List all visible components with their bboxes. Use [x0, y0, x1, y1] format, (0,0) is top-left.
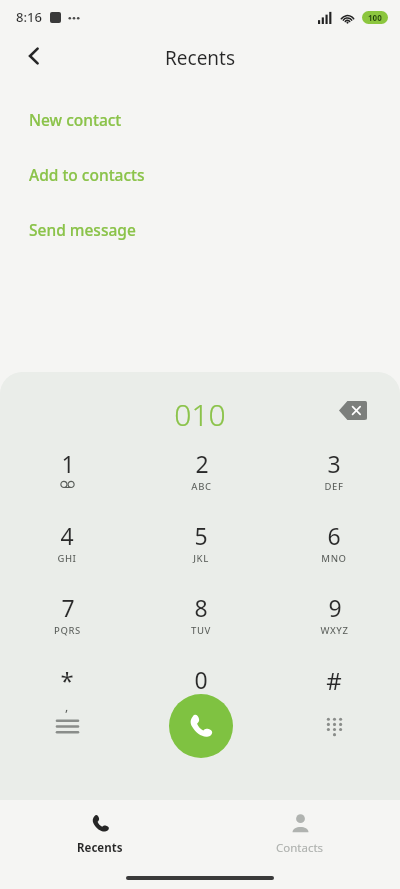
staticText: 0 [194, 664, 208, 695]
staticText: DEF [324, 480, 344, 493]
button[interactable]: 9 [289, 592, 379, 642]
button[interactable]: Backspace [337, 394, 369, 426]
button[interactable]: 8 [156, 592, 246, 642]
button[interactable]: Keypad [310, 702, 358, 750]
button[interactable]: 3 [289, 448, 379, 498]
staticText: 4 [60, 520, 74, 551]
staticText: Add to contacts [29, 164, 145, 185]
button[interactable]: 7 [22, 592, 112, 642]
staticText: New contact [29, 109, 122, 130]
staticText: Send message [29, 219, 136, 240]
staticText: 1 [61, 448, 75, 479]
staticText: Recents [77, 840, 123, 856]
staticText: 2 [195, 448, 209, 479]
staticText: 8 [194, 592, 208, 623]
button[interactable]: Add to contacts [29, 159, 145, 189]
button[interactable]: 2 [156, 448, 246, 498]
button[interactable]: # [289, 664, 379, 714]
button[interactable]: 6 [289, 520, 379, 570]
staticText: 100 [368, 12, 382, 23]
button[interactable]: 5 [156, 520, 246, 570]
staticText: 5 [194, 520, 208, 551]
staticText: 8:16 [16, 8, 42, 26]
button[interactable]: Recents [77, 800, 123, 889]
button[interactable]: 0 [156, 664, 246, 714]
staticText: PQRS [54, 624, 81, 637]
staticText: 9 [328, 592, 342, 623]
staticText: 010 [174, 394, 226, 435]
button[interactable]: Contacts [276, 800, 324, 889]
staticText: 6 [327, 520, 341, 551]
staticText: 7 [61, 592, 75, 623]
button[interactable]: Back [12, 34, 56, 78]
staticText: , [65, 698, 69, 714]
button[interactable]: Call [169, 694, 233, 758]
button[interactable]: More options [43, 702, 91, 750]
button[interactable]: New contact [29, 104, 122, 134]
staticText: # [326, 664, 342, 697]
staticText: JKL [193, 552, 209, 565]
button[interactable]: Send message [29, 214, 136, 244]
staticText: TUV [191, 624, 211, 637]
staticText: Recents [165, 45, 236, 71]
button[interactable]: * [22, 664, 112, 714]
staticText: ABC [191, 480, 212, 493]
staticText: WXYZ [320, 624, 349, 637]
staticText: GHI [57, 552, 77, 565]
button[interactable]: 4 [22, 520, 112, 570]
staticText: * [60, 664, 74, 697]
staticText: 3 [327, 448, 341, 479]
button[interactable]: 1 [22, 448, 112, 498]
staticText: Contacts [276, 840, 324, 856]
staticText: MNO [321, 552, 347, 565]
